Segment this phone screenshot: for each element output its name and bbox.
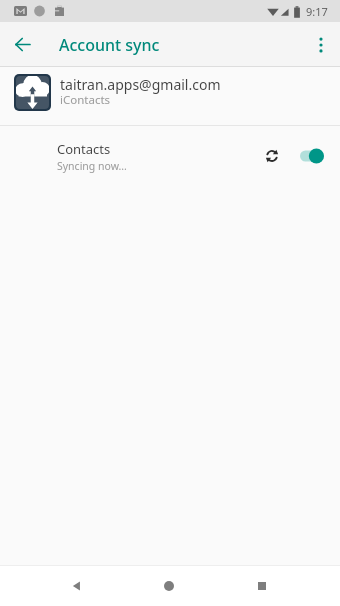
button[interactable]: taitran.apps@gmail.com [0, 67, 340, 117]
staticText: Syncing now… [57, 159, 127, 173]
staticText: Contacts [57, 140, 111, 158]
button[interactable]: Home [122, 566, 215, 606]
button[interactable]: Toggle contacts sync [296, 143, 328, 169]
staticText: iContacts [60, 92, 111, 108]
button[interactable]: More options [295, 22, 340, 67]
staticText: Account sync [59, 34, 160, 56]
staticText: taitran.apps@gmail.com [60, 75, 221, 94]
staticText: 9:17 [306, 4, 328, 19]
button[interactable]: Contacts [0, 126, 340, 186]
button[interactable]: Sync now [259, 143, 285, 169]
button[interactable]: Back [30, 566, 122, 606]
button[interactable]: Recent apps [215, 566, 308, 606]
button[interactable]: Back [0, 22, 45, 67]
